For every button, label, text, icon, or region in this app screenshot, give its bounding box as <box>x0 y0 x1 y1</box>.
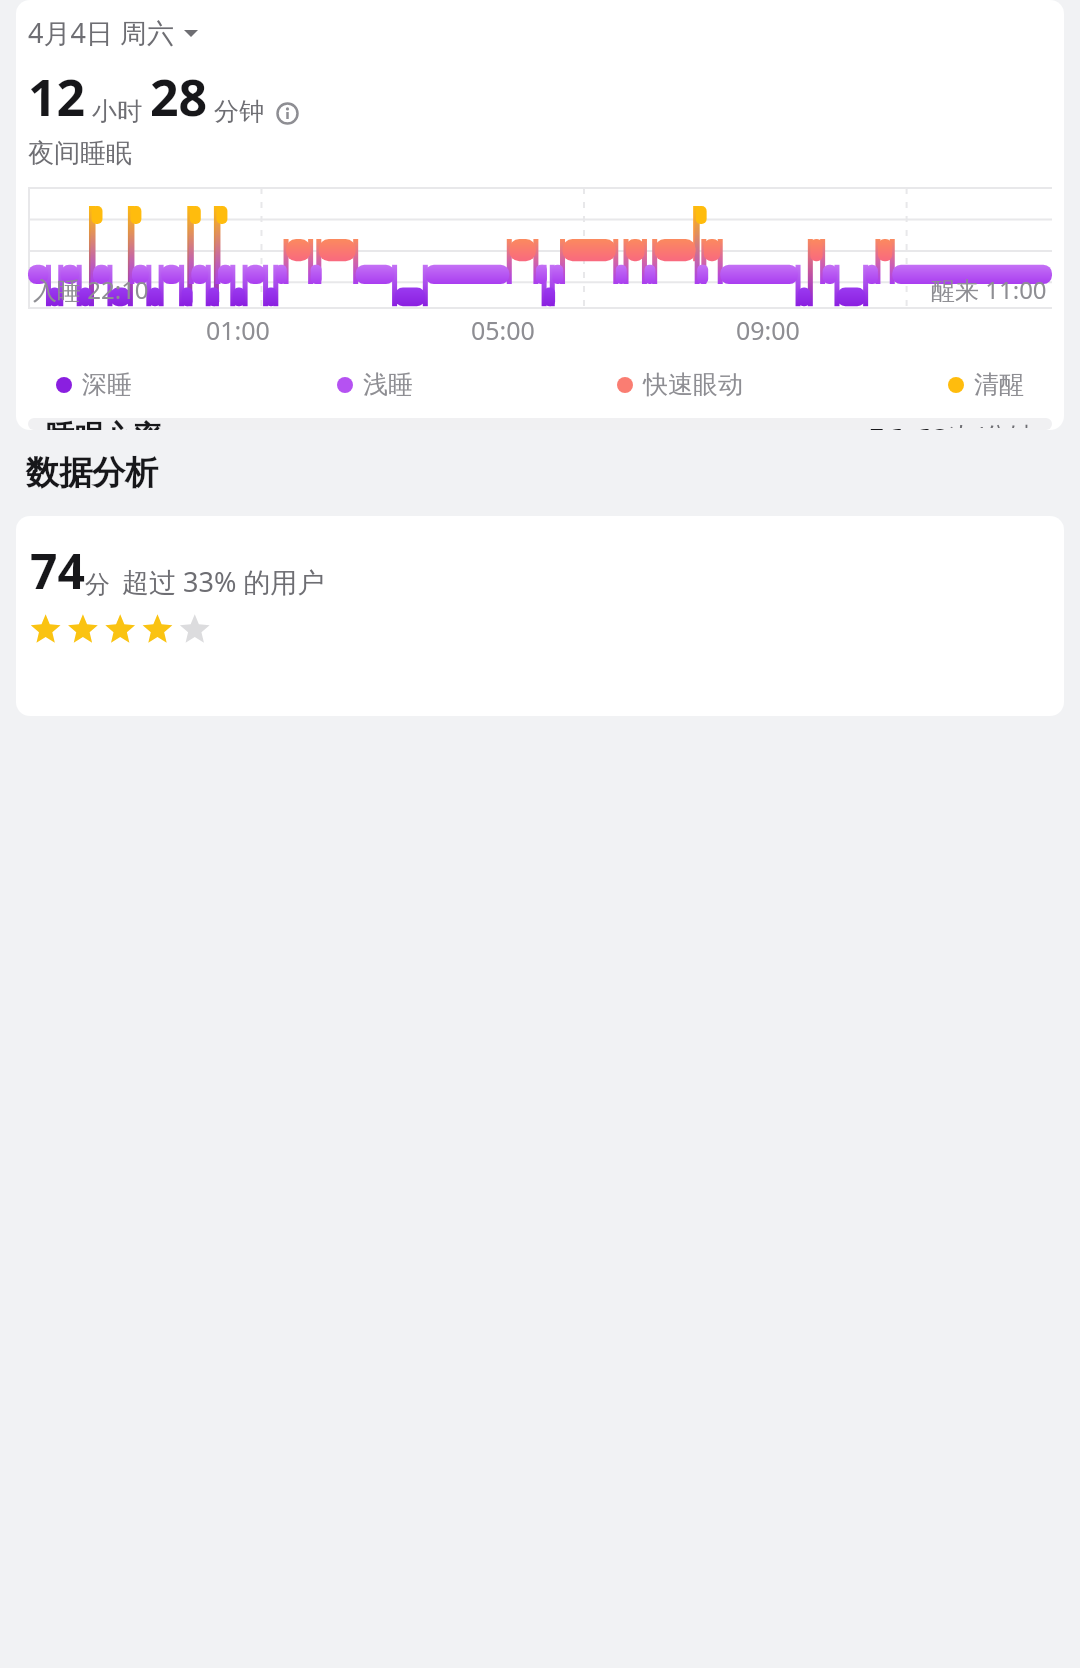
staticText: 深睡 <box>82 369 132 400</box>
button[interactable]: 睡眠心率 <box>28 418 1052 430</box>
staticText: 56-62 <box>868 418 949 430</box>
staticText: 数据分析 <box>26 452 158 494</box>
staticText: 入睡 22:10 <box>33 273 149 306</box>
staticText: 小时 <box>92 96 142 127</box>
staticText: 分钟 <box>214 96 264 127</box>
staticText: 74 <box>30 538 85 603</box>
staticText: 浅睡 <box>363 369 413 400</box>
button[interactable]: Info <box>276 102 299 125</box>
staticText: 12 <box>28 63 86 131</box>
staticText: 分 <box>85 569 110 600</box>
staticText: 05:00 <box>471 313 535 347</box>
staticText: 清醒 <box>974 369 1024 400</box>
staticText: 4月4日 周六 <box>28 14 174 51</box>
staticText: 夜间睡眠 <box>28 137 132 170</box>
staticText: 09:00 <box>736 313 800 347</box>
staticText: 28 <box>150 63 208 131</box>
staticText: 醒来 11:00 <box>931 273 1047 306</box>
staticText: 超过 33% 的用户 <box>122 563 325 600</box>
button[interactable]: 4月4日 周六 <box>28 14 198 51</box>
staticText: 01:00 <box>206 313 270 347</box>
staticText: 睡眠心率 <box>46 418 162 430</box>
staticText: 次/分钟 <box>949 418 1034 428</box>
staticText: 快速眼动 <box>643 369 743 400</box>
